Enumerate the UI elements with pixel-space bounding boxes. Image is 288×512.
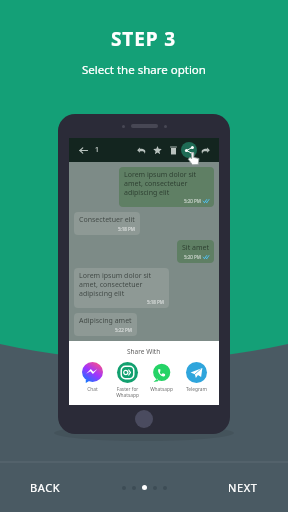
staticText: Sit amet <box>182 243 209 253</box>
staticText: 5:20 PM <box>184 254 201 260</box>
button[interactable]: Whatsapp <box>146 362 176 393</box>
staticText: BACK <box>30 480 61 495</box>
staticText: Whatsapp <box>150 386 173 393</box>
staticText: 5:18 PM <box>118 226 135 232</box>
button[interactable]: Sit amet <box>177 240 214 263</box>
staticText: 5:20 PM <box>184 198 201 204</box>
staticText: Select the share option <box>82 62 206 78</box>
staticText: Adipiscing amet <box>79 316 132 326</box>
button[interactable]: Adipiscing amet <box>74 313 137 336</box>
staticText: Consectetuer elit <box>79 215 135 225</box>
button[interactable]: Forward <box>197 142 213 158</box>
staticText: Telegram <box>186 386 207 393</box>
button[interactable]: BACK <box>22 472 69 503</box>
staticText: NEXT <box>228 480 258 495</box>
button[interactable]: Back <box>75 142 91 158</box>
staticText: Share With <box>127 347 161 356</box>
staticText: STEP 3 <box>111 26 177 52</box>
button[interactable]: Faster for Whatsapp <box>112 362 142 398</box>
staticText: 5:22 PM <box>115 327 132 333</box>
button[interactable]: Star <box>149 142 165 158</box>
staticText: Faster for Whatsapp <box>116 386 139 398</box>
button[interactable]: Chat <box>77 362 107 393</box>
staticText: 5:18 PM <box>147 299 164 305</box>
staticText: Lorem ipsum dolor sit amet, consectetuer… <box>124 170 209 197</box>
button[interactable]: Reply <box>133 142 149 158</box>
button[interactable]: Delete <box>165 142 181 158</box>
button[interactable]: Share <box>181 142 197 158</box>
staticText: Chat <box>87 386 98 393</box>
staticText: Lorem ipsum dolor sit amet, consectetuer… <box>79 271 164 298</box>
button[interactable]: Telegram <box>181 362 211 393</box>
button[interactable]: Lorem ipsum dolor sit amet, consectetuer… <box>119 167 214 207</box>
button[interactable]: Lorem ipsum dolor sit amet, consectetuer… <box>74 268 169 308</box>
button[interactable]: NEXT <box>220 472 266 503</box>
button[interactable]: Consectetuer elit <box>74 212 140 235</box>
staticText: 1 <box>95 145 100 155</box>
